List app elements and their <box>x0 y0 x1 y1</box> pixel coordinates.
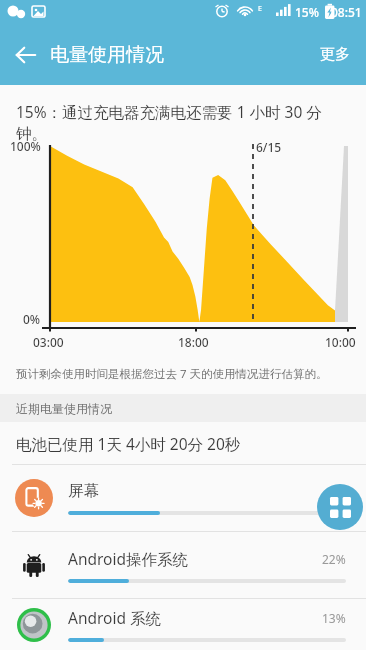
staticText: 03:00 <box>33 334 64 350</box>
button[interactable]: Back <box>4 33 48 77</box>
staticText: 18:00 <box>178 334 209 350</box>
staticText: Android操作系统 <box>68 548 322 569</box>
button[interactable]: 屏幕 <box>0 465 366 531</box>
staticText: 电量使用情况 <box>50 43 164 67</box>
button[interactable]: 更多 <box>312 37 358 72</box>
staticText: 近期电量使用情况 <box>16 401 112 416</box>
staticText: Android 系统 <box>68 607 322 628</box>
staticText: 15%：通过充电器充满电还需要 1 小时 30 分钟。 <box>16 101 346 144</box>
staticText: 10:00 <box>325 334 356 350</box>
staticText: 13% <box>322 610 346 626</box>
staticText: E <box>258 4 262 14</box>
button[interactable]: Apps grid <box>317 484 363 530</box>
staticText: 更多 <box>320 45 350 64</box>
staticText: 22% <box>322 551 346 567</box>
staticText: 100% <box>10 138 41 154</box>
staticText: 6/15 <box>256 139 282 155</box>
button[interactable]: Android操作系统 <box>0 532 366 598</box>
staticText: 电池已使用 1天 4小时 20分 20秒 <box>16 433 241 454</box>
staticText: 屏幕 <box>68 481 346 501</box>
staticText: 预计剩余使用时间是根据您过去 7 天的使用情况进行估算的。 <box>16 366 328 382</box>
button[interactable]: Android 系统 <box>0 599 366 650</box>
staticText: 0% <box>23 311 41 327</box>
staticText: 08:51 <box>331 4 362 20</box>
staticText: 15% <box>295 4 319 20</box>
